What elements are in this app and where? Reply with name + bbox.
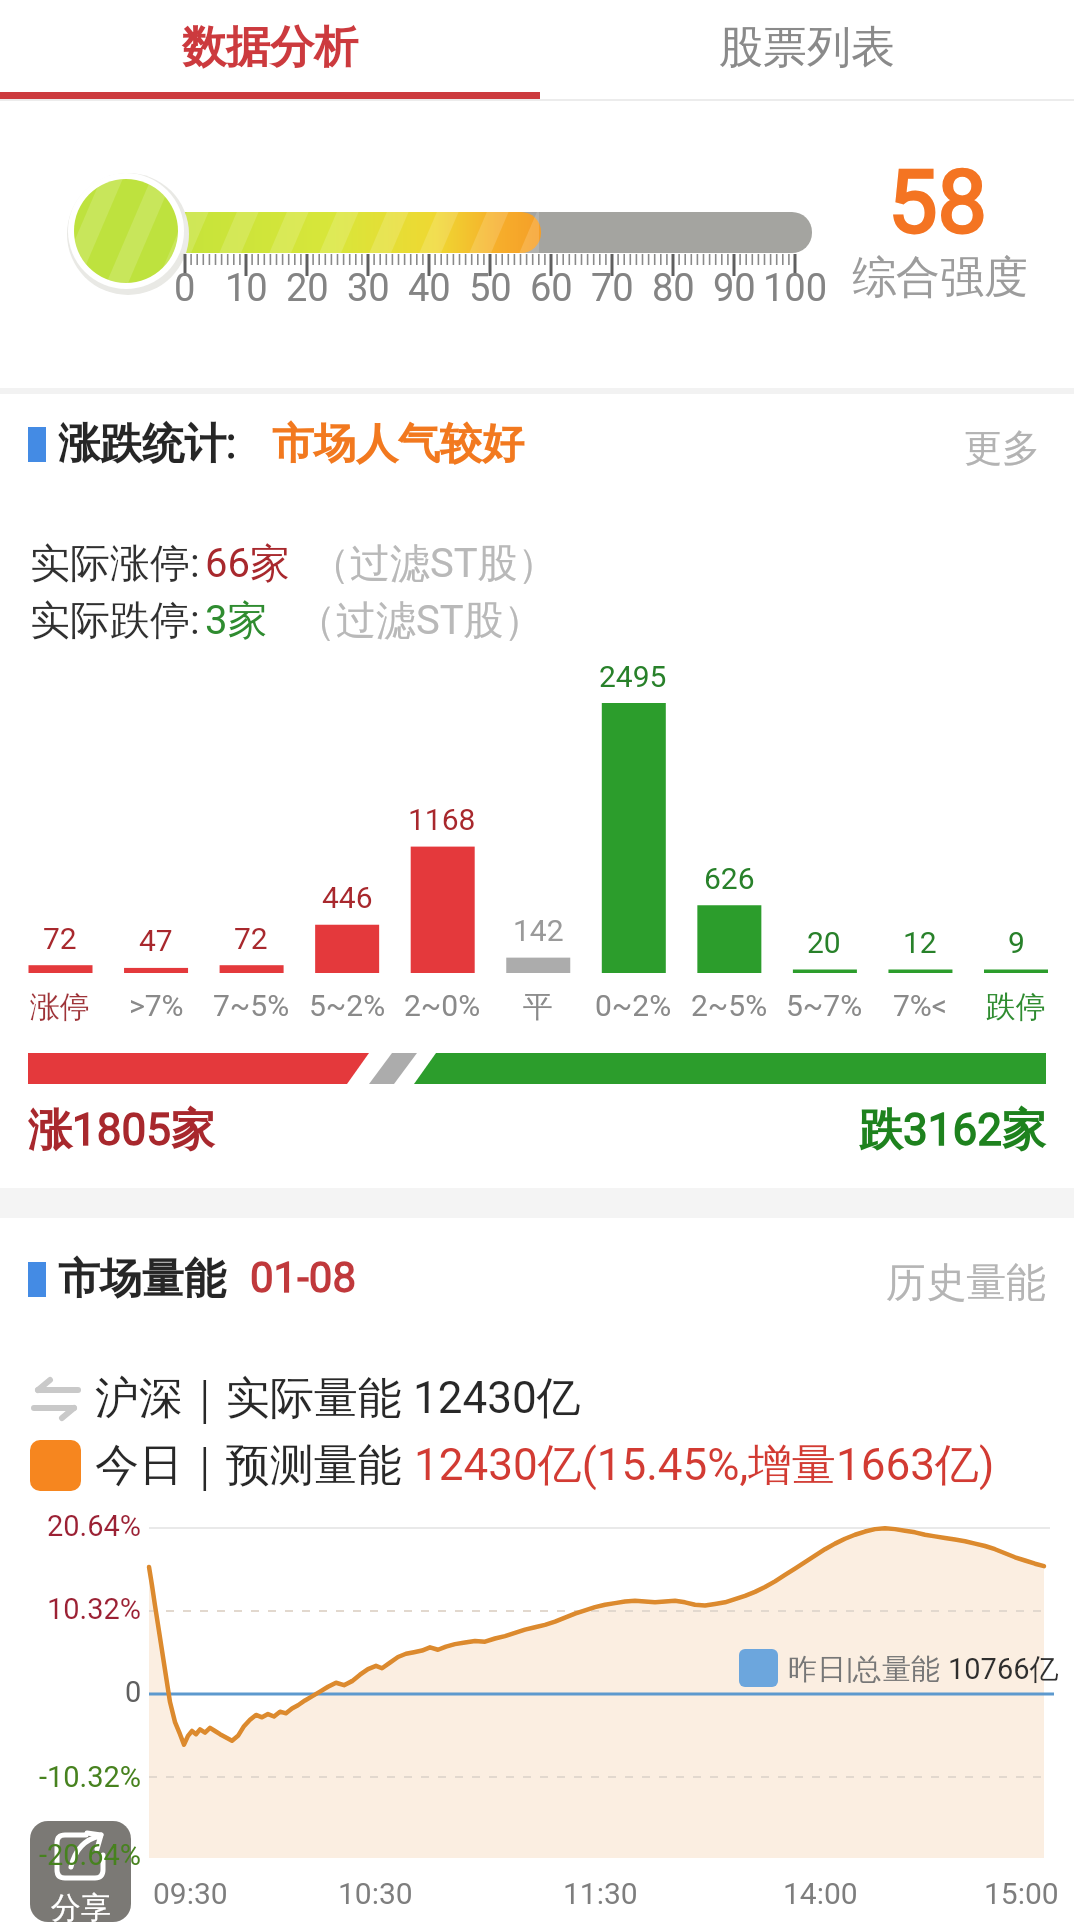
staticText: 20 bbox=[286, 266, 329, 311]
staticText: （过滤ST股） bbox=[296, 595, 544, 645]
staticText: 66家 bbox=[205, 538, 290, 588]
staticText: 10766亿 bbox=[948, 1651, 1059, 1688]
staticText: 626 bbox=[704, 861, 755, 896]
staticText: 分享 bbox=[51, 1889, 111, 1922]
staticText: 60 bbox=[530, 266, 573, 311]
staticText: 3家 bbox=[205, 595, 268, 645]
staticText: 平 bbox=[523, 988, 553, 1026]
staticText: 80 bbox=[652, 266, 695, 311]
staticText: -20.64% bbox=[39, 1838, 142, 1872]
staticText: 40 bbox=[408, 266, 451, 311]
staticText: 11:30 bbox=[563, 1876, 638, 1911]
staticText: 5~2% bbox=[309, 988, 386, 1023]
staticText: 跌3162家 bbox=[859, 1103, 1046, 1158]
staticText: -10.32% bbox=[39, 1760, 142, 1794]
button[interactable]: 历史量能 bbox=[860, 1257, 1046, 1307]
staticText: 涨停 bbox=[30, 988, 90, 1026]
staticText: 跌停 bbox=[986, 988, 1046, 1026]
staticText: 0 bbox=[125, 1675, 142, 1709]
staticText: 100 bbox=[763, 266, 828, 311]
button[interactable]: 股票列表 bbox=[540, 20, 1074, 75]
staticText: 0 bbox=[174, 266, 196, 311]
staticText: 历史量能 bbox=[886, 1257, 1046, 1307]
staticText: 70 bbox=[591, 266, 634, 311]
staticText: 5~7% bbox=[786, 988, 863, 1023]
staticText: 142 bbox=[513, 913, 564, 948]
staticText: 7%< bbox=[893, 988, 948, 1023]
staticText: 10:30 bbox=[338, 1876, 413, 1911]
staticText: 12 bbox=[903, 925, 937, 960]
staticText: 09:30 bbox=[153, 1876, 228, 1911]
staticText: 更多 bbox=[964, 424, 1040, 472]
staticText: 昨日|总量能 bbox=[788, 1651, 948, 1688]
staticText: 市场量能 bbox=[58, 1253, 226, 1306]
staticText: （过滤ST股） bbox=[310, 538, 558, 588]
staticText: 实际跌停: bbox=[30, 595, 200, 645]
staticText: 30 bbox=[347, 266, 390, 311]
staticText: 10 bbox=[225, 266, 268, 311]
staticText: >7% bbox=[129, 988, 184, 1023]
staticText: 58 bbox=[888, 150, 987, 253]
staticText: 数据分析 bbox=[182, 20, 358, 75]
button[interactable]: 数据分析 bbox=[0, 20, 540, 75]
staticText: 10.32% bbox=[47, 1592, 142, 1626]
staticText: 15:00 bbox=[984, 1876, 1059, 1911]
staticText: 14:00 bbox=[783, 1876, 858, 1911]
staticText: 50 bbox=[469, 266, 512, 311]
staticText: 沪深｜实际量能 12430亿 bbox=[95, 1371, 581, 1426]
staticText: 股票列表 bbox=[719, 20, 895, 75]
button[interactable]: 更多 bbox=[900, 424, 1040, 472]
staticText: 综合强度 bbox=[852, 250, 1028, 305]
staticText: 1168 bbox=[408, 802, 476, 837]
staticText: 72 bbox=[234, 921, 268, 956]
staticText: 涨跌统计: bbox=[58, 418, 237, 471]
staticText: 47 bbox=[139, 923, 173, 958]
staticText: 90 bbox=[713, 266, 756, 311]
staticText: 20.64% bbox=[47, 1509, 142, 1543]
staticText: 实际涨停: bbox=[30, 538, 200, 588]
staticText: 72 bbox=[43, 921, 77, 956]
staticText: 0~2% bbox=[595, 988, 672, 1023]
staticText: 2~5% bbox=[691, 988, 768, 1023]
staticText: 446 bbox=[322, 880, 373, 915]
staticText: 9 bbox=[1008, 925, 1025, 960]
staticText: 今日｜预测量能 bbox=[95, 1438, 414, 1493]
staticText: 7~5% bbox=[213, 988, 290, 1023]
staticText: 市场人气较好 bbox=[272, 418, 524, 471]
staticText: 20 bbox=[807, 925, 841, 960]
staticText: 12430亿(15.45%,增量1663亿) bbox=[414, 1438, 995, 1493]
staticText: 涨1805家 bbox=[28, 1103, 215, 1158]
staticText: 2~0% bbox=[404, 988, 481, 1023]
button[interactable]: 分享 bbox=[30, 1821, 131, 1922]
staticText: 01-08 bbox=[250, 1253, 357, 1302]
staticText: 2495 bbox=[599, 659, 667, 694]
